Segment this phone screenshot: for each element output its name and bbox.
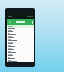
button[interactable] (7, 31, 34, 34)
button[interactable] (7, 58, 34, 61)
button[interactable] (7, 49, 34, 52)
button[interactable] (7, 28, 34, 31)
button[interactable] (7, 55, 34, 58)
button[interactable] (7, 25, 34, 28)
button[interactable] (7, 46, 34, 49)
button[interactable] (7, 34, 34, 37)
button[interactable] (7, 61, 34, 62)
button[interactable] (7, 37, 34, 40)
button[interactable] (7, 43, 34, 46)
button[interactable]: Navigate back (7, 19, 34, 25)
button[interactable] (7, 40, 34, 43)
button[interactable] (7, 52, 34, 55)
button[interactable]: Navigate back (8, 20, 12, 24)
